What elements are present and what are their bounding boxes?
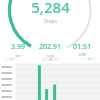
button[interactable]: 01:51 bbox=[66, 42, 98, 57]
staticText: 202.91 bbox=[39, 42, 61, 52]
button[interactable]: 日 bbox=[3, 57, 19, 61]
staticText: km bbox=[15, 53, 21, 58]
button[interactable]: 3.99 bbox=[2, 42, 34, 58]
button[interactable]: Weekly step chart bbox=[0, 64, 100, 100]
staticText: 5,284 bbox=[31, 0, 70, 17]
button[interactable]: 月 bbox=[81, 57, 97, 61]
staticText: 週 bbox=[49, 57, 52, 61]
staticText: kcal bbox=[47, 53, 54, 58]
staticText: 3.99 bbox=[11, 42, 25, 52]
button[interactable]: 週 bbox=[42, 57, 58, 61]
staticText: 時間 bbox=[79, 53, 86, 57]
staticText: Steps bbox=[44, 18, 57, 25]
staticText: 01:51 bbox=[73, 42, 91, 52]
staticText: 月 bbox=[88, 57, 91, 61]
staticText: 日 bbox=[10, 57, 13, 61]
button[interactable]: 202.91 bbox=[34, 42, 66, 58]
